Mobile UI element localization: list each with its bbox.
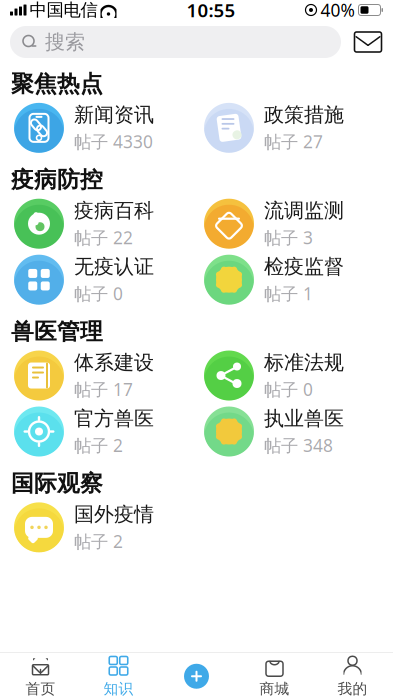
staticText: 兽医管理 (11, 318, 103, 345)
button[interactable]: 搜索 (10, 26, 341, 58)
button[interactable]: 我的 (313, 653, 391, 699)
staticText: 帖子 0 (74, 282, 123, 305)
button[interactable]: 商城 (235, 653, 313, 699)
staticText: 官方兽医 (74, 406, 154, 431)
button[interactable]: 无疫认证 (14, 252, 200, 308)
button[interactable]: 国外疫情 (14, 499, 200, 555)
staticText: 搜索 (45, 30, 85, 54)
staticText: 体系建设 (74, 350, 154, 375)
staticText: 知识 (103, 680, 133, 698)
staticText: 40% (320, 0, 354, 21)
staticText: 帖子 348 (264, 434, 333, 457)
staticText: 帖子 17 (74, 378, 133, 401)
staticText: 标准法规 (264, 350, 344, 375)
button[interactable]: 新闻资讯 (14, 100, 200, 156)
button[interactable]: 知识 (79, 653, 157, 699)
staticText: 帖子 2 (74, 530, 123, 553)
staticText: 疫病百科 (74, 198, 154, 223)
staticText: 聚焦热点 (11, 70, 103, 98)
button[interactable]: 检疫监督 (204, 252, 390, 308)
staticText: 执业兽医 (264, 406, 344, 431)
staticText: 商城 (259, 680, 289, 698)
staticText: 疫病防控 (11, 166, 103, 194)
staticText: 帖子 1 (264, 282, 313, 305)
staticText: 新闻资讯 (74, 103, 154, 127)
staticText: 帖子 0 (264, 378, 313, 401)
staticText: 流调监测 (264, 198, 344, 223)
staticText: 10:55 (186, 0, 235, 22)
staticText: 帖子 4330 (74, 130, 153, 153)
staticText: 帖子 27 (264, 130, 323, 153)
button[interactable]: 发布 (157, 653, 235, 699)
staticText: 我的 (337, 680, 367, 698)
button[interactable]: 疫病百科 (14, 196, 200, 252)
staticText: 国际观察 (11, 469, 103, 497)
staticText: 无疫认证 (74, 254, 154, 279)
staticText: 政策措施 (264, 103, 344, 127)
button[interactable]: 执业兽医 (204, 403, 390, 459)
staticText: 帖子 22 (74, 226, 133, 249)
staticText: 首页 (25, 680, 55, 698)
button[interactable]: 标准法规 (204, 347, 390, 403)
button[interactable]: 流调监测 (204, 196, 390, 252)
staticText: 帖子 2 (74, 434, 123, 457)
button[interactable]: 体系建设 (14, 347, 200, 403)
button[interactable]: 消息 (353, 27, 383, 57)
staticText: 检疫监督 (264, 254, 344, 279)
staticText: 帖子 3 (264, 226, 313, 249)
button[interactable]: 政策措施 (204, 100, 390, 156)
staticText: 中国电信 (29, 0, 97, 21)
button[interactable]: 首页 (1, 653, 79, 699)
button[interactable]: 官方兽医 (14, 403, 200, 459)
staticText: 国外疫情 (74, 502, 154, 527)
